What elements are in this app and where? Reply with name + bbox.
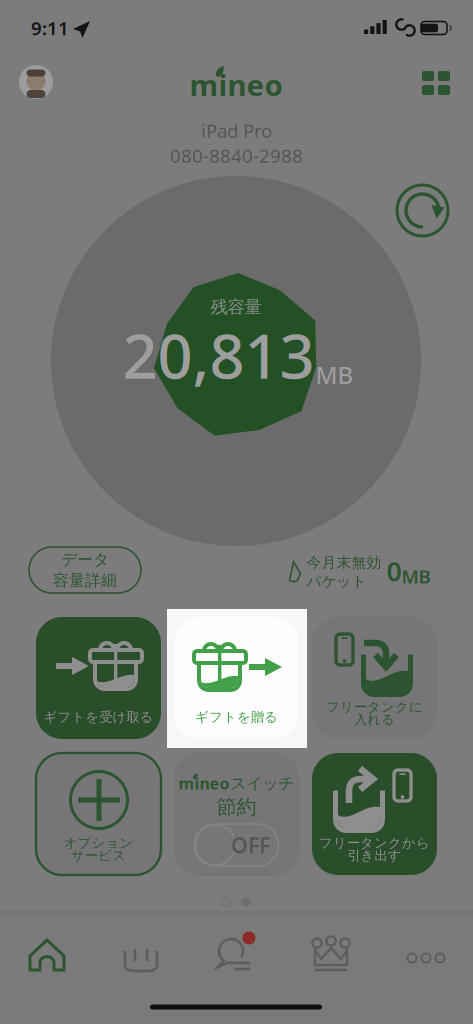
staticText: 引き出す — [347, 847, 401, 864]
staticText: オプション — [63, 835, 133, 851]
staticText: 節約 — [216, 795, 256, 819]
staticText: MB — [315, 359, 353, 391]
staticText: 0 — [386, 553, 401, 589]
button[interactable]: Account — [16, 62, 56, 102]
staticText: MB — [401, 564, 430, 589]
staticText: パケット — [306, 572, 366, 590]
staticText: ギフトを贈る — [195, 709, 278, 725]
staticText: 080-8840-2988 — [170, 143, 303, 168]
button[interactable]: Home — [0, 925, 94, 985]
staticText: 容量詳細 — [53, 570, 117, 590]
button[interactable]: フリータンクから — [312, 753, 437, 875]
staticText: フリータンクに — [326, 699, 423, 715]
button[interactable]: ギフトを贈る — [174, 617, 299, 739]
staticText: mineo — [179, 773, 230, 794]
staticText: 入れる — [354, 711, 395, 728]
button[interactable]: フリータンクに — [312, 617, 437, 739]
staticText: ギフトを贈る — [195, 709, 278, 725]
button[interactable]: ギフトを受け取る — [36, 617, 161, 739]
staticText: サービス — [71, 847, 126, 864]
staticText: スイッチ — [230, 774, 294, 793]
staticText: 20,813 — [122, 314, 314, 396]
staticText: データ — [61, 550, 109, 569]
button[interactable]: Refresh — [395, 183, 449, 237]
button[interactable]: More — [379, 928, 473, 988]
button[interactable]: Rewards — [284, 925, 378, 985]
button[interactable]: オプション — [36, 753, 161, 875]
button[interactable]: mineo — [174, 753, 299, 875]
button[interactable]: Menu — [414, 61, 458, 105]
staticText: ギフトを受け取る — [43, 709, 153, 725]
button[interactable]: Data — [94, 925, 188, 985]
staticText: OFF — [231, 831, 270, 859]
staticText: 9:11 — [31, 16, 69, 40]
button[interactable]: Chat — [189, 925, 283, 985]
button[interactable]: ギフトを贈る — [174, 617, 299, 739]
staticText: 残容量 — [210, 296, 261, 318]
staticText: 今月末無効 — [306, 553, 381, 571]
staticText: iPad Pro — [201, 118, 272, 143]
staticText: mineo — [189, 65, 282, 104]
staticText: フリータンクから — [319, 835, 430, 851]
button[interactable]: データ — [29, 547, 141, 593]
